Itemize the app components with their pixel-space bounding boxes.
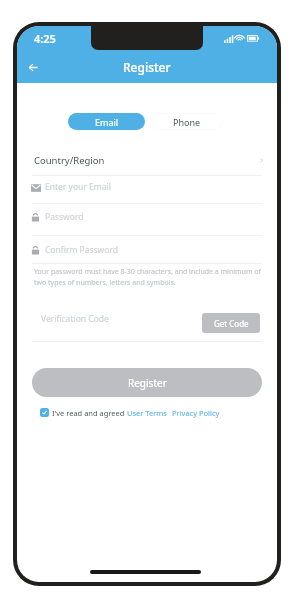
staticText: Country/Region [34,154,105,167]
staticText: Enter your Email [45,181,111,193]
button[interactable]: Register [32,368,262,397]
button[interactable]: Back [17,51,49,83]
staticText: Phone [173,116,201,128]
button[interactable]: User Terms [127,408,167,418]
button[interactable]: Confirm Password [17,234,277,266]
staticText: 4:25 [34,31,56,46]
staticText: Get Code [214,318,249,329]
staticText: I've read and agreed [52,408,125,418]
staticText: Email [95,116,119,128]
button[interactable]: Password [17,201,277,233]
staticText: Confirm Password [45,244,118,256]
button[interactable]: Privacy Policy [172,408,220,418]
button[interactable]: Email [68,113,145,130]
staticText: Verification Code [41,313,109,325]
staticText: Register [123,59,171,75]
button[interactable]: Agree to terms [40,408,49,417]
button[interactable]: Get Code [202,313,260,333]
staticText: Password [45,211,84,223]
staticText: Your password must have 8-30 characters,… [34,267,261,287]
button[interactable]: Phone [151,113,223,130]
button[interactable]: Enter your Email [17,171,277,203]
button[interactable]: Country/Region [17,145,277,175]
staticText: Register [128,376,167,390]
